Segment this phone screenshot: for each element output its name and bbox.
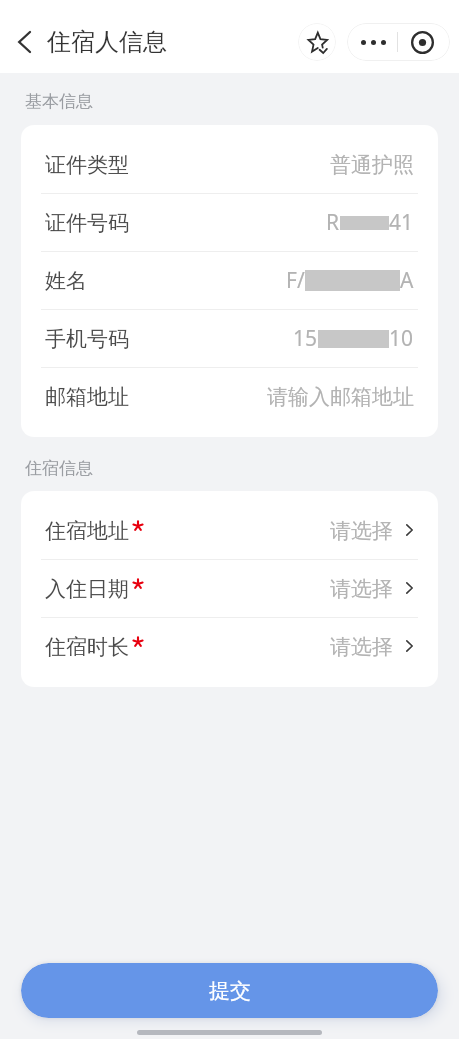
staticText: F/ <box>286 266 305 295</box>
staticText: 入住日期 <box>45 576 129 602</box>
staticText: 姓名 <box>45 268 87 294</box>
staticText: 15 <box>293 324 318 353</box>
staticText: 提交 <box>209 978 251 1004</box>
button[interactable]: 手机号码 <box>21 310 438 367</box>
staticText: 住宿信息 <box>25 458 93 479</box>
staticText: A <box>400 266 414 295</box>
staticText: 41 <box>389 208 414 237</box>
button[interactable]: Back <box>9 27 39 57</box>
staticText: 请选择 <box>330 518 393 544</box>
staticText: R <box>326 208 340 237</box>
staticText: 手机号码 <box>45 326 129 352</box>
staticText: 住宿时长 <box>45 634 129 660</box>
staticText: 邮箱地址 <box>45 384 129 410</box>
button[interactable]: Close mini program <box>398 23 450 61</box>
staticText: 请选择 <box>330 576 393 602</box>
staticText: 住宿人信息 <box>47 27 167 57</box>
staticText: 证件号码 <box>45 210 129 236</box>
button[interactable]: 提交 <box>21 963 438 1018</box>
button[interactable]: 住宿时长 <box>21 618 438 675</box>
staticText: 基本信息 <box>25 91 93 112</box>
staticText: 10 <box>389 324 414 353</box>
staticText: 住宿地址 <box>45 518 129 544</box>
button[interactable]: Favorite <box>298 23 336 61</box>
button[interactable]: 姓名 <box>21 252 438 309</box>
button[interactable]: 证件类型 <box>21 136 438 193</box>
button[interactable]: 邮箱地址 <box>21 368 438 425</box>
button[interactable]: 住宿地址 <box>21 502 438 559</box>
button[interactable]: 证件号码 <box>21 194 438 251</box>
staticText: 请输入邮箱地址 <box>267 384 414 410</box>
button[interactable]: More options <box>347 23 397 61</box>
staticText: 普通护照 <box>330 152 414 178</box>
staticText: 请选择 <box>330 634 393 660</box>
button[interactable]: 入住日期 <box>21 560 438 617</box>
staticText: 证件类型 <box>45 152 129 178</box>
